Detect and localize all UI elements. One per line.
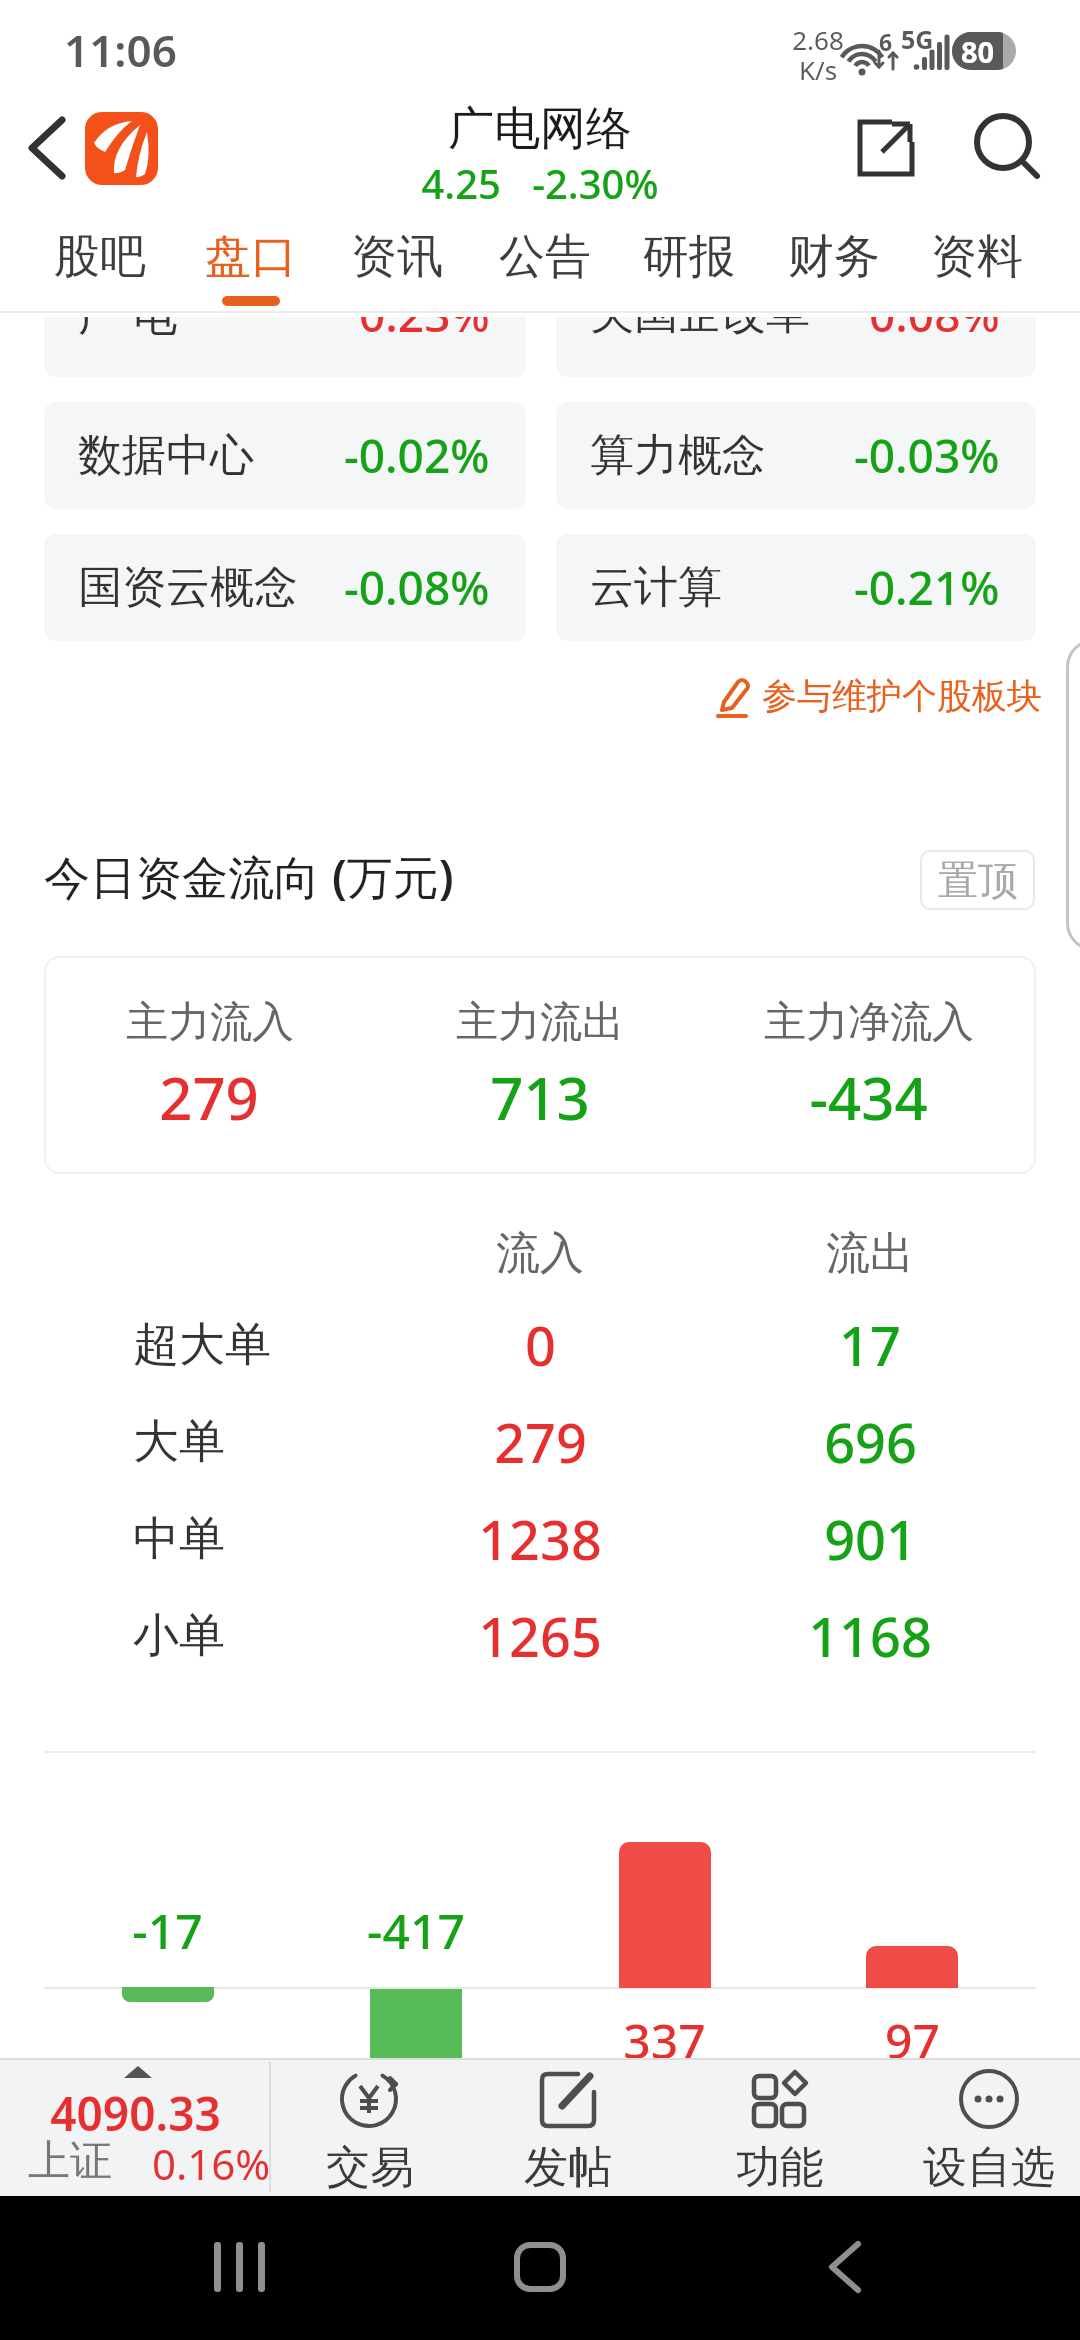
- staticText: 大单: [133, 1413, 225, 1471]
- button[interactable]: [972, 112, 1042, 182]
- staticText: 广 电: [78, 317, 178, 343]
- button[interactable]: 央国企改革: [556, 317, 1036, 377]
- staticText: 1168: [808, 1599, 932, 1673]
- staticText: 交易: [326, 2140, 414, 2195]
- staticText: 置顶: [938, 855, 1018, 905]
- staticText: 盘口: [205, 228, 297, 286]
- staticText: 97: [885, 2008, 940, 2073]
- staticText: 1238: [478, 1502, 602, 1576]
- staticText: 主力流入: [126, 996, 294, 1049]
- staticText: 2.68 K/s: [792, 22, 844, 87]
- staticText: 901: [824, 1502, 917, 1576]
- staticText: 资讯: [351, 228, 443, 286]
- staticText: -434: [809, 1058, 928, 1137]
- staticText: -0.03%: [854, 424, 1000, 487]
- staticText: 0.16%: [152, 2135, 271, 2192]
- staticText: 算力概念: [590, 428, 766, 483]
- staticText: -0.02%: [344, 424, 490, 487]
- staticText: 4090.33: [50, 2082, 221, 2145]
- staticText: 超大单: [133, 1316, 271, 1374]
- button[interactable]: 盘口: [176, 228, 326, 304]
- button[interactable]: [899, 2062, 1079, 2194]
- staticText: 今日资金流向 (万元): [44, 845, 454, 908]
- button[interactable]: 参与维护个股板块: [690, 668, 1050, 724]
- staticText: 中单: [133, 1510, 225, 1568]
- button[interactable]: [85, 112, 158, 185]
- staticText: 云计算: [590, 560, 722, 615]
- button[interactable]: [826, 2242, 866, 2292]
- staticText: 小单: [133, 1607, 225, 1665]
- staticText: 6: [879, 26, 893, 57]
- staticText: 4.25 -2.30%: [421, 156, 659, 210]
- button[interactable]: 置顶: [920, 850, 1035, 910]
- staticText: 0: [525, 1308, 556, 1382]
- button[interactable]: [280, 2062, 460, 2194]
- staticText: 流入: [496, 1226, 584, 1281]
- staticText: 696: [824, 1405, 917, 1479]
- staticText: -0.08%: [344, 556, 490, 619]
- staticText: 17: [839, 1308, 901, 1382]
- staticText: 11:06: [64, 20, 177, 80]
- staticText: 资料: [931, 228, 1023, 286]
- staticText: 主力净流入: [764, 996, 974, 1049]
- staticText: 数据中心: [78, 428, 254, 483]
- staticText: 279: [494, 1405, 587, 1479]
- staticText: 功能: [736, 2140, 824, 2195]
- staticText: 财务: [788, 228, 880, 286]
- button[interactable]: 国资云概念: [44, 534, 526, 641]
- staticText: 80: [961, 32, 995, 70]
- button[interactable]: 数据中心: [44, 402, 526, 509]
- staticText: 国资云概念: [78, 560, 298, 615]
- staticText: -417: [367, 1898, 465, 1963]
- staticText: 5G: [901, 22, 934, 56]
- staticText: 股吧: [54, 228, 146, 286]
- staticText: 公告: [499, 228, 591, 286]
- button[interactable]: 财务: [759, 228, 909, 304]
- staticText: 广电网络: [448, 100, 632, 158]
- button[interactable]: 研报: [614, 228, 764, 304]
- staticText: 流出: [826, 1226, 914, 1281]
- staticText: 279: [159, 1058, 259, 1137]
- button[interactable]: 广 电: [44, 317, 526, 377]
- staticText: 0.23%: [359, 317, 490, 343]
- staticText: 1265: [478, 1599, 602, 1673]
- staticText: -17: [132, 1898, 203, 1963]
- staticText: 337: [623, 2008, 706, 2073]
- staticText: 0.08%: [869, 317, 1000, 343]
- button[interactable]: 云计算: [556, 534, 1036, 641]
- button[interactable]: 股吧: [25, 228, 175, 304]
- staticText: -0.21%: [854, 556, 1000, 619]
- staticText: 研报: [643, 228, 735, 286]
- button[interactable]: 算力概念: [556, 402, 1036, 509]
- staticText: 设自选: [923, 2140, 1055, 2195]
- button[interactable]: [690, 2062, 870, 2194]
- staticText: 发帖: [524, 2140, 612, 2195]
- button[interactable]: [210, 2242, 272, 2292]
- staticText: 上证: [28, 2135, 112, 2188]
- button[interactable]: [26, 116, 70, 182]
- staticText: 主力流出: [456, 996, 624, 1049]
- staticText: 713: [490, 1058, 590, 1137]
- staticText: 央国企改革: [590, 317, 810, 341]
- button[interactable]: [0, 2058, 270, 2196]
- staticText: 参与维护个股板块: [762, 674, 1042, 718]
- button[interactable]: 资料: [902, 228, 1052, 304]
- button[interactable]: [514, 2242, 566, 2292]
- button[interactable]: [478, 2062, 658, 2194]
- button[interactable]: 公告: [470, 228, 620, 304]
- button[interactable]: 资讯: [322, 228, 472, 304]
- button[interactable]: [856, 118, 916, 178]
